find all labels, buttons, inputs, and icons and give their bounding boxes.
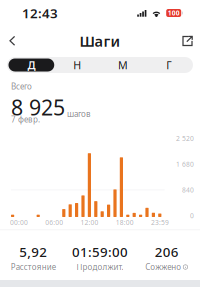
staticText: Г xyxy=(166,58,171,72)
staticText: Шаги xyxy=(79,31,120,51)
staticText: 840 xyxy=(182,185,194,194)
staticText: 23:59 xyxy=(151,218,169,227)
staticText: 12:43 xyxy=(22,4,58,22)
staticText: Сожжено xyxy=(145,262,181,272)
button[interactable]: М xyxy=(100,58,146,71)
staticText: Всего xyxy=(11,81,32,92)
staticText: 8 925 xyxy=(11,93,65,121)
staticText: 06:00 xyxy=(45,218,63,227)
button[interactable]: Back xyxy=(3,31,22,50)
staticText: шагов xyxy=(67,109,91,119)
staticText: 206 xyxy=(155,243,179,261)
staticText: Д xyxy=(27,58,35,72)
staticText: Расстояние xyxy=(11,262,56,272)
staticText: Продолжит. xyxy=(76,262,123,272)
button[interactable]: Share xyxy=(177,31,198,50)
staticText: 00:00 xyxy=(10,218,28,227)
staticText: 1 680 xyxy=(176,160,194,169)
staticText: 18:00 xyxy=(116,218,134,227)
staticText: Н xyxy=(73,58,81,72)
button[interactable]: Д xyxy=(8,58,54,71)
button[interactable]: Г xyxy=(146,58,192,71)
staticText: 7 февр. xyxy=(11,114,40,125)
button[interactable]: Н xyxy=(54,58,100,71)
staticText: 2 520 xyxy=(176,134,194,143)
staticText: 0 xyxy=(190,211,194,220)
staticText: М xyxy=(118,58,128,72)
staticText: 01:59:00 xyxy=(72,243,128,261)
staticText: 100 xyxy=(168,9,180,17)
staticText: 12:00 xyxy=(80,218,98,227)
staticText: 5,92 xyxy=(19,243,47,261)
